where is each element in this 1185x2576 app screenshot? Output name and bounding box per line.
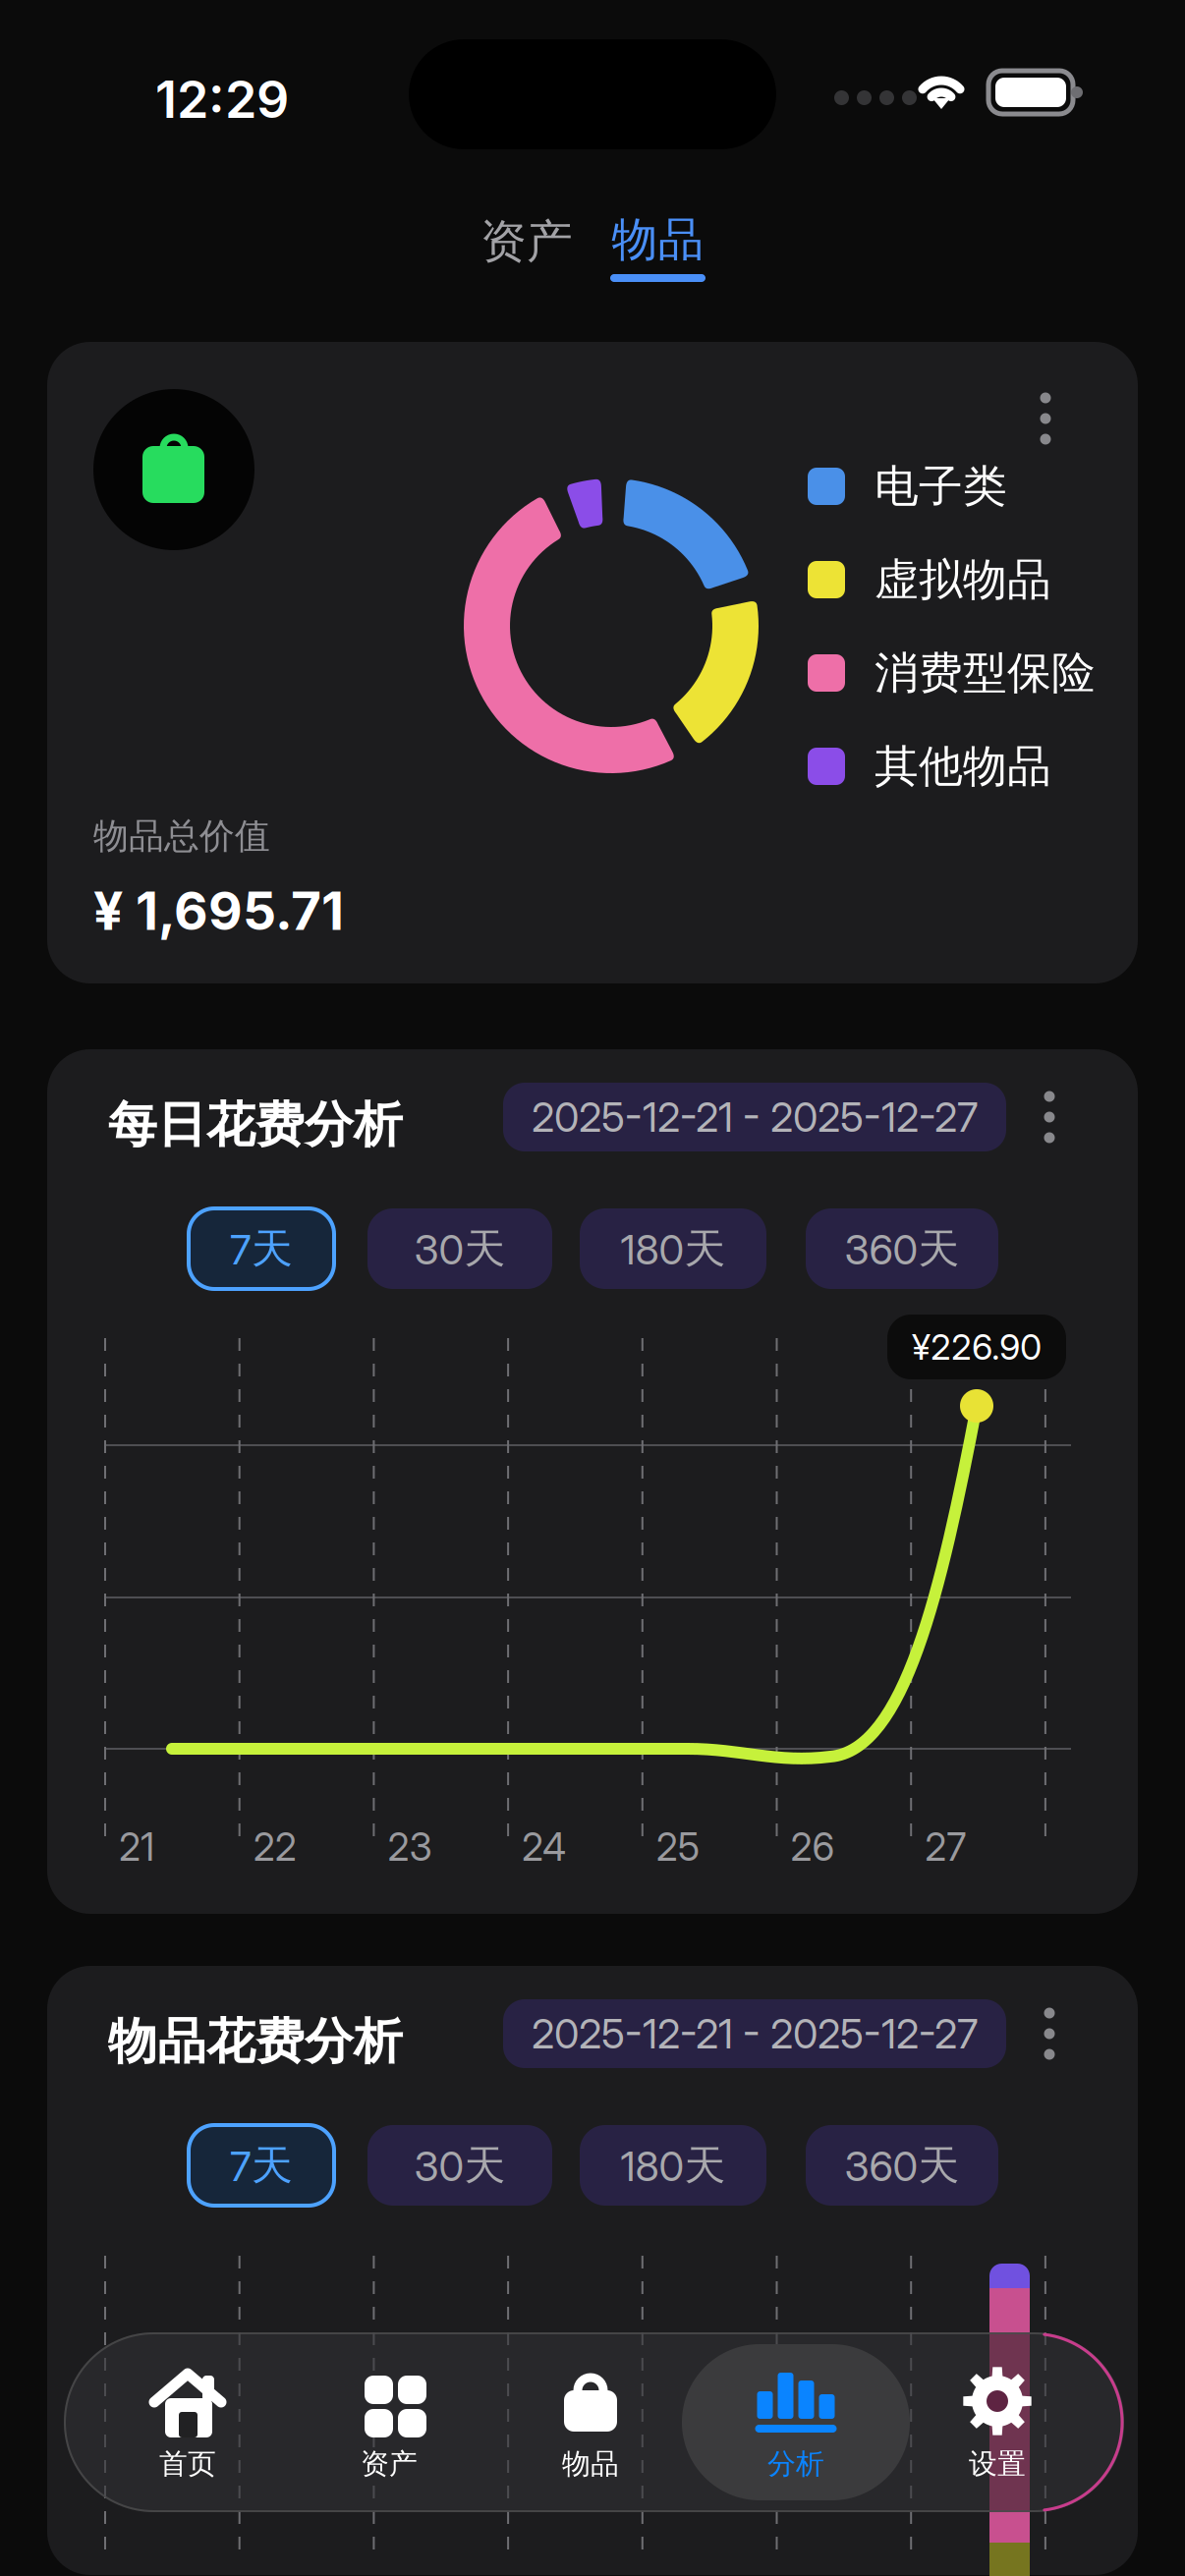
- staticText: 26: [790, 1824, 835, 1870]
- staticText: 360天: [845, 2139, 959, 2191]
- staticText: 物品: [612, 211, 704, 269]
- button[interactable]: 物品: [610, 214, 705, 282]
- button[interactable]: 7天: [189, 2125, 334, 2206]
- button[interactable]: 2025-12-21 - 2025-12-27: [503, 1083, 1006, 1151]
- staticText: 12:29: [155, 68, 289, 130]
- staticText: 180天: [621, 1223, 726, 1275]
- staticText: 每日花费分析: [108, 1094, 403, 1156]
- staticText: 7天: [230, 1223, 293, 1275]
- button[interactable]: 资产: [275, 2344, 503, 2500]
- staticText: 其他物品: [875, 739, 1051, 794]
- staticText: 24: [522, 1824, 566, 1870]
- staticText: 23: [388, 1824, 432, 1870]
- staticText: 30天: [414, 2139, 506, 2191]
- button[interactable]: More options: [1022, 1996, 1077, 2071]
- staticText: 2025-12-21 - 2025-12-27: [532, 2009, 978, 2058]
- staticText: 25: [656, 1824, 699, 1870]
- staticText: 资产: [361, 2446, 418, 2482]
- button[interactable]: 2025-12-21 - 2025-12-27: [503, 1999, 1006, 2068]
- button[interactable]: 30天: [367, 2125, 552, 2206]
- button[interactable]: 180天: [580, 2125, 766, 2206]
- staticText: 27: [925, 1824, 966, 1870]
- staticText: 7天: [230, 2139, 293, 2191]
- button[interactable]: 设置: [883, 2344, 1111, 2500]
- staticText: ¥226.90: [912, 1326, 1042, 1368]
- staticText: 分析: [767, 2446, 824, 2482]
- button[interactable]: 360天: [806, 2125, 998, 2206]
- staticText: 2025-12-21 - 2025-12-27: [532, 1092, 978, 1142]
- staticText: 设置: [969, 2446, 1026, 2482]
- button[interactable]: 物品: [477, 2344, 705, 2500]
- button[interactable]: 30天: [367, 1208, 552, 1289]
- button[interactable]: 180天: [580, 1208, 766, 1289]
- staticText: 消费型保险: [875, 645, 1096, 701]
- button[interactable]: More options: [1022, 1080, 1077, 1154]
- staticText: ¥ 1,695.71: [93, 879, 344, 942]
- staticText: 物品花费分析: [108, 2011, 403, 2072]
- staticText: 30天: [414, 1223, 506, 1275]
- staticText: 物品总价值: [93, 814, 270, 858]
- button[interactable]: 资产: [480, 213, 573, 271]
- staticText: 资产: [480, 213, 573, 271]
- staticText: 虚拟物品: [875, 552, 1051, 607]
- staticText: 首页: [159, 2446, 216, 2482]
- staticText: 物品: [562, 2446, 619, 2482]
- staticText: 22: [253, 1824, 296, 1870]
- button[interactable]: More options: [1018, 381, 1073, 456]
- staticText: 电子类: [875, 459, 1007, 514]
- staticText: 360天: [845, 1223, 959, 1275]
- staticText: 21: [119, 1824, 154, 1870]
- button[interactable]: 分析: [682, 2344, 910, 2500]
- button[interactable]: 360天: [806, 1208, 998, 1289]
- button[interactable]: 首页: [74, 2344, 302, 2500]
- button[interactable]: 7天: [189, 1208, 334, 1289]
- staticText: 180天: [621, 2139, 726, 2191]
